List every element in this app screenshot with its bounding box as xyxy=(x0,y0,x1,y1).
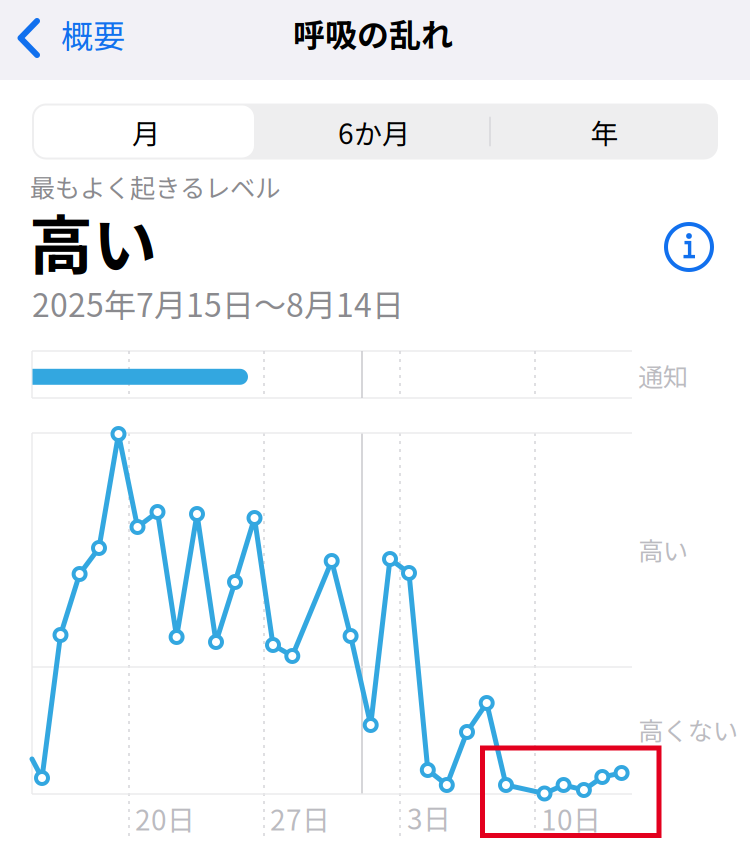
staticText: 最もよく起きるレベル xyxy=(30,168,280,205)
button[interactable]: 年 xyxy=(489,103,720,160)
staticText: 概要 xyxy=(61,11,125,57)
staticText: 高くない xyxy=(638,711,738,748)
button[interactable]: 情報 xyxy=(661,219,717,275)
button[interactable]: 6か月 xyxy=(258,103,489,160)
staticText: 呼吸の乱れ xyxy=(293,10,453,56)
staticText: 年 xyxy=(590,112,618,152)
staticText: 月 xyxy=(132,112,160,152)
button[interactable]: 月 xyxy=(34,103,258,160)
staticText: 10日 xyxy=(541,798,601,838)
staticText: 27日 xyxy=(270,798,330,838)
staticText: 20日 xyxy=(135,798,195,838)
staticText: 高い xyxy=(29,194,157,287)
staticText: 通知 xyxy=(638,357,688,394)
staticText: 3日 xyxy=(407,797,451,837)
button[interactable]: 概要 xyxy=(0,0,130,80)
staticText: 6か月 xyxy=(338,112,410,152)
staticText: 高い xyxy=(638,531,688,568)
staticText: 2025年7月15日〜8月14日 xyxy=(32,280,404,326)
